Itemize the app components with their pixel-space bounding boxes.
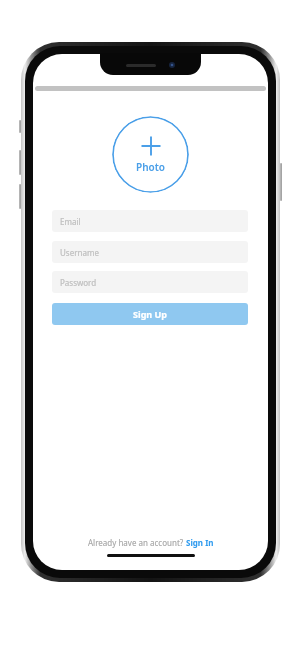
- button[interactable]: Add photo: [112, 116, 189, 193]
- button[interactable]: Password: [52, 271, 248, 293]
- staticText: Username: [60, 247, 99, 258]
- button[interactable]: Already have an account?: [88, 537, 214, 548]
- staticText: Already have an account?: [88, 537, 186, 548]
- staticText: Sign In: [186, 537, 214, 548]
- staticText: Sign Up: [133, 308, 168, 320]
- button[interactable]: Username: [52, 241, 248, 263]
- staticText: Password: [60, 277, 97, 288]
- button[interactable]: Email: [52, 210, 248, 232]
- button[interactable]: Sign Up: [52, 303, 248, 325]
- staticText: Photo: [136, 160, 165, 174]
- staticText: Email: [60, 216, 81, 227]
